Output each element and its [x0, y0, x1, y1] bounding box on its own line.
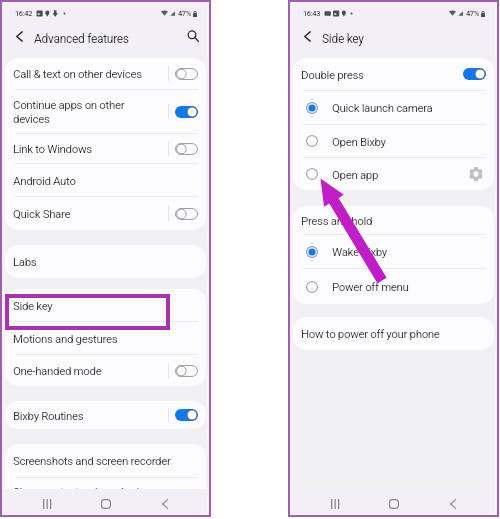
- staticText: 16:43: [303, 9, 321, 18]
- button[interactable]: One-handed mode: [5, 355, 206, 386]
- staticText: Call & text on other devices: [13, 67, 160, 80]
- staticText: Side key: [13, 299, 190, 312]
- staticText: Labs: [13, 255, 190, 268]
- staticText: 47%: [178, 9, 191, 18]
- button[interactable]: Screenshots and screen recorder: [5, 444, 206, 477]
- button[interactable]: Link to Windows: [5, 134, 206, 163]
- staticText: 16:42: [15, 9, 33, 18]
- staticText: Continue apps on other devices: [13, 98, 160, 126]
- button[interactable]: Quick launch camera: [293, 91, 494, 124]
- button[interactable]: How to power off your phone: [293, 317, 494, 350]
- staticText: Motions and gestures: [13, 332, 190, 345]
- staticText: Advanced features: [34, 32, 129, 46]
- button[interactable]: Recent apps: [17, 495, 76, 513]
- button[interactable]: Continue apps on other devices: [5, 90, 206, 133]
- button[interactable]: Quick Share: [5, 197, 206, 230]
- button[interactable]: Search: [178, 23, 207, 49]
- button[interactable]: Labs: [5, 245, 206, 278]
- button[interactable]: Android Auto: [5, 164, 206, 196]
- button[interactable]: Open app: [293, 158, 494, 190]
- staticText: Android Auto: [13, 174, 190, 187]
- staticText: Open app: [332, 168, 379, 181]
- button[interactable]: Navigate up: [292, 23, 322, 49]
- staticText: Double press: [301, 68, 455, 81]
- staticText: Screenshots and screen recorder: [13, 454, 190, 467]
- staticText: Bixby Routines: [13, 409, 160, 422]
- staticText: Side key: [322, 32, 364, 46]
- button[interactable]: Wake Bixby: [293, 235, 494, 268]
- staticText: Quick Share: [13, 207, 160, 220]
- button[interactable]: Motions and gestures: [5, 322, 206, 354]
- button[interactable]: Press and hold: [293, 206, 494, 234]
- button[interactable]: Show contacts when sharing: [5, 478, 206, 505]
- button[interactable]: Bixby Routines: [5, 401, 206, 429]
- staticText: Power off menu: [332, 280, 409, 293]
- staticText: Press and hold: [301, 214, 478, 227]
- button[interactable]: Back: [423, 495, 482, 513]
- button[interactable]: Back: [135, 495, 194, 513]
- staticText: How to power off your phone: [301, 327, 478, 340]
- button[interactable]: Navigate up: [4, 23, 34, 49]
- button[interactable]: Recent apps: [305, 495, 364, 513]
- button[interactable]: Home: [76, 495, 135, 513]
- button[interactable]: Power off menu: [293, 269, 494, 304]
- button[interactable]: Open Bixby: [293, 125, 494, 157]
- staticText: Open Bixby: [332, 135, 386, 148]
- staticText: One-handed mode: [13, 364, 160, 377]
- staticText: Quick launch camera: [332, 101, 433, 114]
- button[interactable]: Double press: [293, 58, 494, 90]
- staticText: Show contacts when sharing: [13, 485, 190, 498]
- staticText: Link to Windows: [13, 142, 160, 155]
- button[interactable]: Side key: [5, 289, 206, 321]
- staticText: Wake Bixby: [332, 245, 387, 258]
- button[interactable]: Call & text on other devices: [5, 58, 206, 89]
- button[interactable]: App settings: [467, 165, 485, 183]
- button[interactable]: Home: [364, 495, 423, 513]
- staticText: 47%: [466, 9, 479, 18]
